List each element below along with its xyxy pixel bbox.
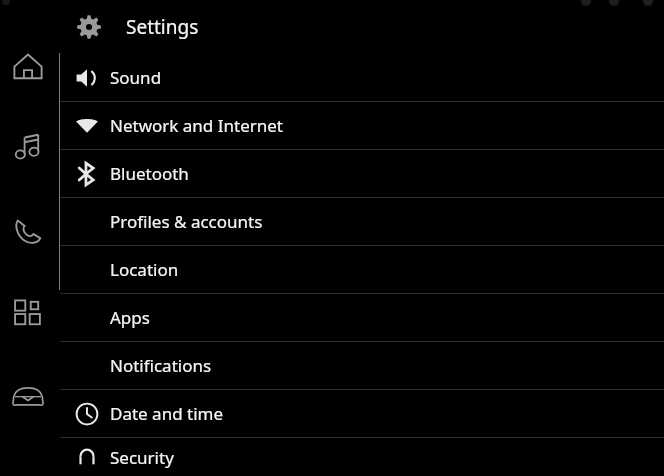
button[interactable]: Phone [4, 206, 52, 254]
staticText: Bluetooth [110, 162, 189, 185]
staticText: Security [110, 446, 174, 469]
button[interactable]: Profiles & accounts [60, 198, 664, 245]
staticText: Settings [126, 14, 199, 40]
staticText: Profiles & accounts [110, 210, 263, 233]
button[interactable]: Location [60, 246, 664, 293]
button[interactable]: Apps [4, 288, 52, 336]
button[interactable]: Security [60, 438, 664, 476]
button[interactable]: Notifications [60, 342, 664, 389]
button[interactable]: Car settings [4, 372, 52, 420]
staticText: Notifications [110, 354, 212, 377]
staticText: Location [110, 258, 179, 281]
staticText: Sound [110, 66, 162, 89]
staticText: Apps [110, 306, 150, 329]
button[interactable]: Date and time [60, 390, 664, 437]
staticText: Network and Internet [110, 114, 283, 137]
button[interactable]: Sound [60, 54, 664, 101]
button[interactable]: Settings [60, 0, 664, 54]
button[interactable]: Home [4, 42, 52, 90]
staticText: Date and time [110, 402, 224, 425]
button[interactable]: Bluetooth [60, 150, 664, 197]
button[interactable]: Apps [60, 294, 664, 341]
button[interactable]: Media [4, 123, 52, 171]
button[interactable]: Network and Internet [60, 102, 664, 149]
